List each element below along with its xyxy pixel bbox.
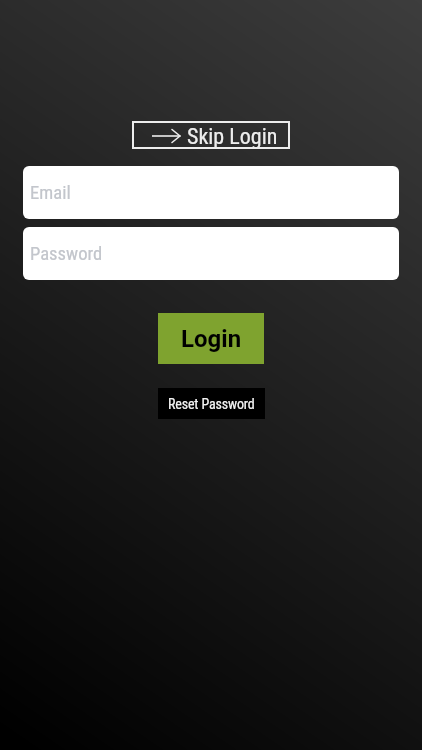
staticText: Password xyxy=(30,243,103,265)
staticText: Reset Password xyxy=(168,396,255,412)
staticText: Skip Login xyxy=(187,124,278,150)
button[interactable]: Email xyxy=(23,166,399,219)
button[interactable]: Reset Password xyxy=(158,388,265,419)
button[interactable]: Skip Login xyxy=(132,121,290,149)
staticText: Login xyxy=(181,325,242,353)
button[interactable]: Password xyxy=(23,227,399,280)
button[interactable]: Login xyxy=(158,313,264,364)
staticText: Email xyxy=(30,182,71,204)
